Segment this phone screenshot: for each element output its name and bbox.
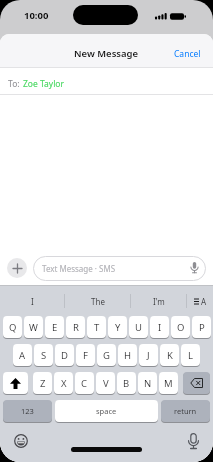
button[interactable]: return bbox=[161, 400, 210, 422]
button[interactable]: Cancel bbox=[171, 45, 204, 63]
button[interactable]: Text Message · SMS bbox=[33, 256, 206, 281]
staticText: space bbox=[96, 406, 117, 416]
button[interactable]: O bbox=[171, 316, 190, 338]
staticText: To: bbox=[8, 78, 20, 90]
button[interactable]: Q bbox=[3, 316, 22, 338]
staticText: U bbox=[135, 321, 142, 334]
button[interactable]: C bbox=[75, 372, 94, 394]
staticText: D bbox=[61, 349, 68, 362]
staticText: Zoe Taylor bbox=[23, 78, 65, 90]
button[interactable]: K bbox=[160, 344, 179, 366]
staticText: L bbox=[188, 349, 193, 362]
staticText: 10:00 bbox=[24, 9, 49, 22]
button[interactable]: The bbox=[65, 286, 130, 312]
button[interactable]: I'm bbox=[131, 286, 186, 312]
button[interactable]: A bbox=[187, 286, 213, 312]
button[interactable]: N bbox=[138, 372, 157, 394]
staticText: Text Message · SMS bbox=[42, 263, 116, 274]
button[interactable]: F bbox=[76, 344, 95, 366]
button[interactable]: A bbox=[13, 344, 32, 366]
staticText: H bbox=[124, 349, 132, 362]
staticText: B bbox=[123, 377, 130, 390]
staticText: New Message bbox=[74, 47, 139, 60]
button[interactable]: Z bbox=[33, 372, 52, 394]
staticText: S bbox=[41, 349, 47, 362]
staticText: Q bbox=[9, 321, 17, 334]
button[interactable]: I bbox=[150, 316, 169, 338]
staticText: return bbox=[174, 406, 197, 416]
staticText: W bbox=[29, 321, 38, 334]
button[interactable]: D bbox=[55, 344, 74, 366]
button[interactable] bbox=[183, 372, 210, 394]
button[interactable]: space bbox=[55, 400, 158, 422]
staticText: J bbox=[147, 349, 150, 362]
staticText: I bbox=[31, 296, 34, 307]
staticText: G bbox=[103, 349, 110, 362]
button[interactable]: To: bbox=[0, 68, 213, 94]
button[interactable]: Y bbox=[108, 316, 127, 338]
staticText: A bbox=[201, 296, 207, 307]
button[interactable] bbox=[186, 432, 200, 450]
button[interactable]: T bbox=[87, 316, 106, 338]
button[interactable] bbox=[7, 258, 27, 278]
button[interactable] bbox=[3, 372, 28, 394]
staticText: 123 bbox=[21, 406, 34, 416]
button[interactable]: S bbox=[34, 344, 53, 366]
staticText: Cancel bbox=[174, 48, 201, 60]
button[interactable]: I bbox=[0, 286, 64, 312]
staticText: The bbox=[91, 296, 105, 307]
staticText: M bbox=[164, 377, 173, 390]
button[interactable]: P bbox=[192, 316, 211, 338]
button[interactable]: X bbox=[54, 372, 73, 394]
button[interactable]: E bbox=[45, 316, 64, 338]
button[interactable]: G bbox=[97, 344, 116, 366]
staticText: R bbox=[73, 321, 79, 334]
staticText: Y bbox=[115, 321, 121, 334]
button[interactable]: V bbox=[96, 372, 115, 394]
button[interactable]: R bbox=[66, 316, 85, 338]
button[interactable]: U bbox=[129, 316, 148, 338]
button[interactable] bbox=[13, 433, 29, 449]
button[interactable]: 123 bbox=[3, 400, 52, 422]
staticText: E bbox=[52, 321, 58, 334]
button[interactable]: B bbox=[117, 372, 136, 394]
staticText: Z bbox=[40, 377, 46, 390]
button[interactable]: W bbox=[24, 316, 43, 338]
staticText: T bbox=[94, 321, 100, 334]
staticText: X bbox=[61, 377, 67, 390]
button[interactable]: J bbox=[139, 344, 158, 366]
staticText: N bbox=[144, 377, 152, 390]
staticText: P bbox=[199, 321, 205, 334]
button[interactable]: L bbox=[181, 344, 200, 366]
staticText: A bbox=[19, 349, 26, 362]
staticText: I'm bbox=[153, 296, 165, 307]
staticText: I bbox=[158, 321, 162, 334]
staticText: O bbox=[177, 321, 185, 334]
button[interactable]: M bbox=[159, 372, 178, 394]
button[interactable]: H bbox=[118, 344, 137, 366]
staticText: F bbox=[83, 349, 88, 362]
staticText: C bbox=[81, 377, 88, 390]
staticText: V bbox=[103, 377, 109, 390]
staticText: K bbox=[167, 349, 173, 362]
